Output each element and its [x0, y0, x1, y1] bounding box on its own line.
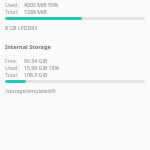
staticText: 8 GB LPDDR5 — [5, 24, 38, 31]
staticText: Internal Storage — [5, 43, 51, 51]
staticText: Used: — [5, 64, 19, 71]
staticText: Total: — [5, 71, 19, 78]
staticText: 106.3 GiB — [24, 71, 48, 78]
staticText: 90.34 GiB — [24, 57, 48, 64]
staticText: 4000 MiB 55% — [24, 1, 59, 8]
staticText: 15.96 GiB 15% — [24, 64, 59, 71]
staticText: Used: — [5, 1, 19, 8]
staticText: Free: — [5, 57, 17, 64]
staticText: Total: — [5, 8, 19, 15]
staticText: 7288 MiB — [24, 8, 47, 15]
button[interactable]: Free: — [5, 57, 146, 78]
staticText: /storage/emulated/0 — [5, 87, 56, 94]
button[interactable]: Used: — [5, 1, 146, 15]
